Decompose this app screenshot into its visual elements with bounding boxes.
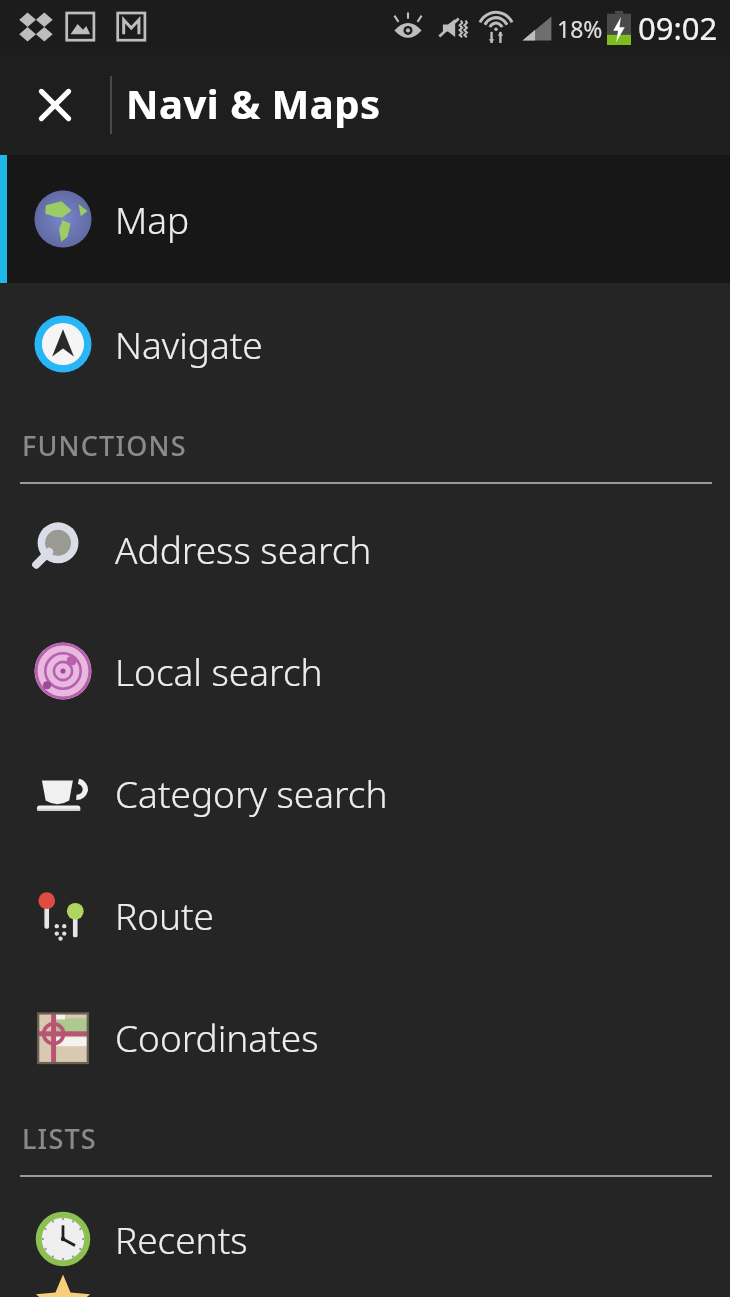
button[interactable]: Address search bbox=[0, 488, 730, 610]
button[interactable]: Local search bbox=[0, 610, 730, 732]
staticText: Map bbox=[115, 194, 190, 244]
button[interactable]: Recents bbox=[0, 1181, 730, 1297]
button[interactable]: Coordinates bbox=[0, 976, 730, 1098]
staticText: Local search bbox=[115, 646, 323, 696]
staticText: LISTS bbox=[22, 1120, 97, 1157]
staticText: Route bbox=[115, 890, 215, 940]
staticText: Recents bbox=[115, 1214, 248, 1264]
button[interactable]: Map bbox=[0, 155, 730, 283]
button[interactable]: Category search bbox=[0, 732, 730, 854]
staticText: Navi & Maps bbox=[126, 76, 381, 130]
staticText: Category search bbox=[115, 768, 388, 818]
staticText: Address search bbox=[115, 524, 372, 574]
staticText: Coordinates bbox=[115, 1012, 319, 1062]
staticText: Navigate bbox=[115, 319, 263, 369]
button[interactable]: Route bbox=[0, 854, 730, 976]
staticText: 09:02 bbox=[638, 7, 718, 49]
staticText: 18% bbox=[557, 13, 603, 44]
staticText: FUNCTIONS bbox=[22, 427, 187, 464]
button[interactable]: Navigate bbox=[0, 283, 730, 405]
button[interactable]: Close bbox=[16, 66, 94, 144]
